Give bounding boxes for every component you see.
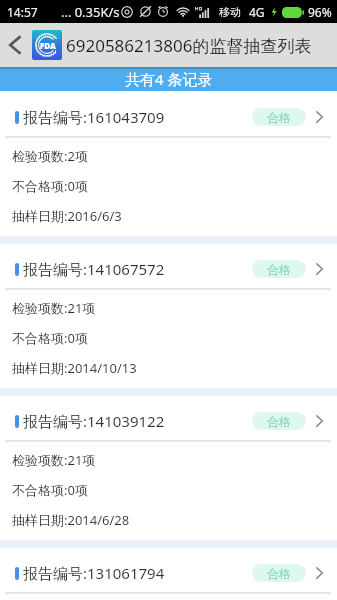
staticText: 6920586213806的监督抽查列表 [66,34,312,57]
staticText: FDA [40,40,56,51]
staticText: 移动 [219,5,241,19]
staticText: 共有4 条记录 [125,69,213,89]
staticText: 不合格项:0项 [12,177,88,195]
staticText: 报告编号:161043709 [23,107,165,127]
button[interactable]: 报告编号:141039122 [0,396,337,540]
staticText: 96% [308,4,332,20]
staticText: 检验项数:2项 [12,147,88,165]
staticText: 报告编号:131061794 [23,563,165,583]
staticText: 合格 [267,414,291,429]
staticText: 不合格项:0项 [12,481,88,499]
button[interactable]: 报告编号:131061794 [0,548,337,600]
staticText: 抽样日期:2016/6/3 [12,207,122,225]
staticText: 报告编号:141039122 [23,411,165,431]
staticText: 抽样日期:2014/10/13 [12,359,137,377]
button[interactable]: 报告编号:161043709 [0,92,337,236]
button[interactable]: Back [0,23,30,67]
staticText: 不合格项:0项 [12,329,88,347]
staticText: 14:57 [7,4,38,20]
staticText: 抽样日期:2014/6/28 [12,511,130,529]
staticText: 4G [249,4,265,20]
staticText: 报告编号:141067572 [23,259,165,279]
staticText: 合格 [267,566,291,581]
staticText: 合格 [267,262,291,277]
button[interactable]: 报告编号:141067572 [0,244,337,388]
staticText: 检验项数:21项 [12,299,96,317]
staticText: 合格 [267,110,291,125]
staticText: … 0.35K/s [61,3,120,21]
staticText: 检验项数:21项 [12,451,96,469]
